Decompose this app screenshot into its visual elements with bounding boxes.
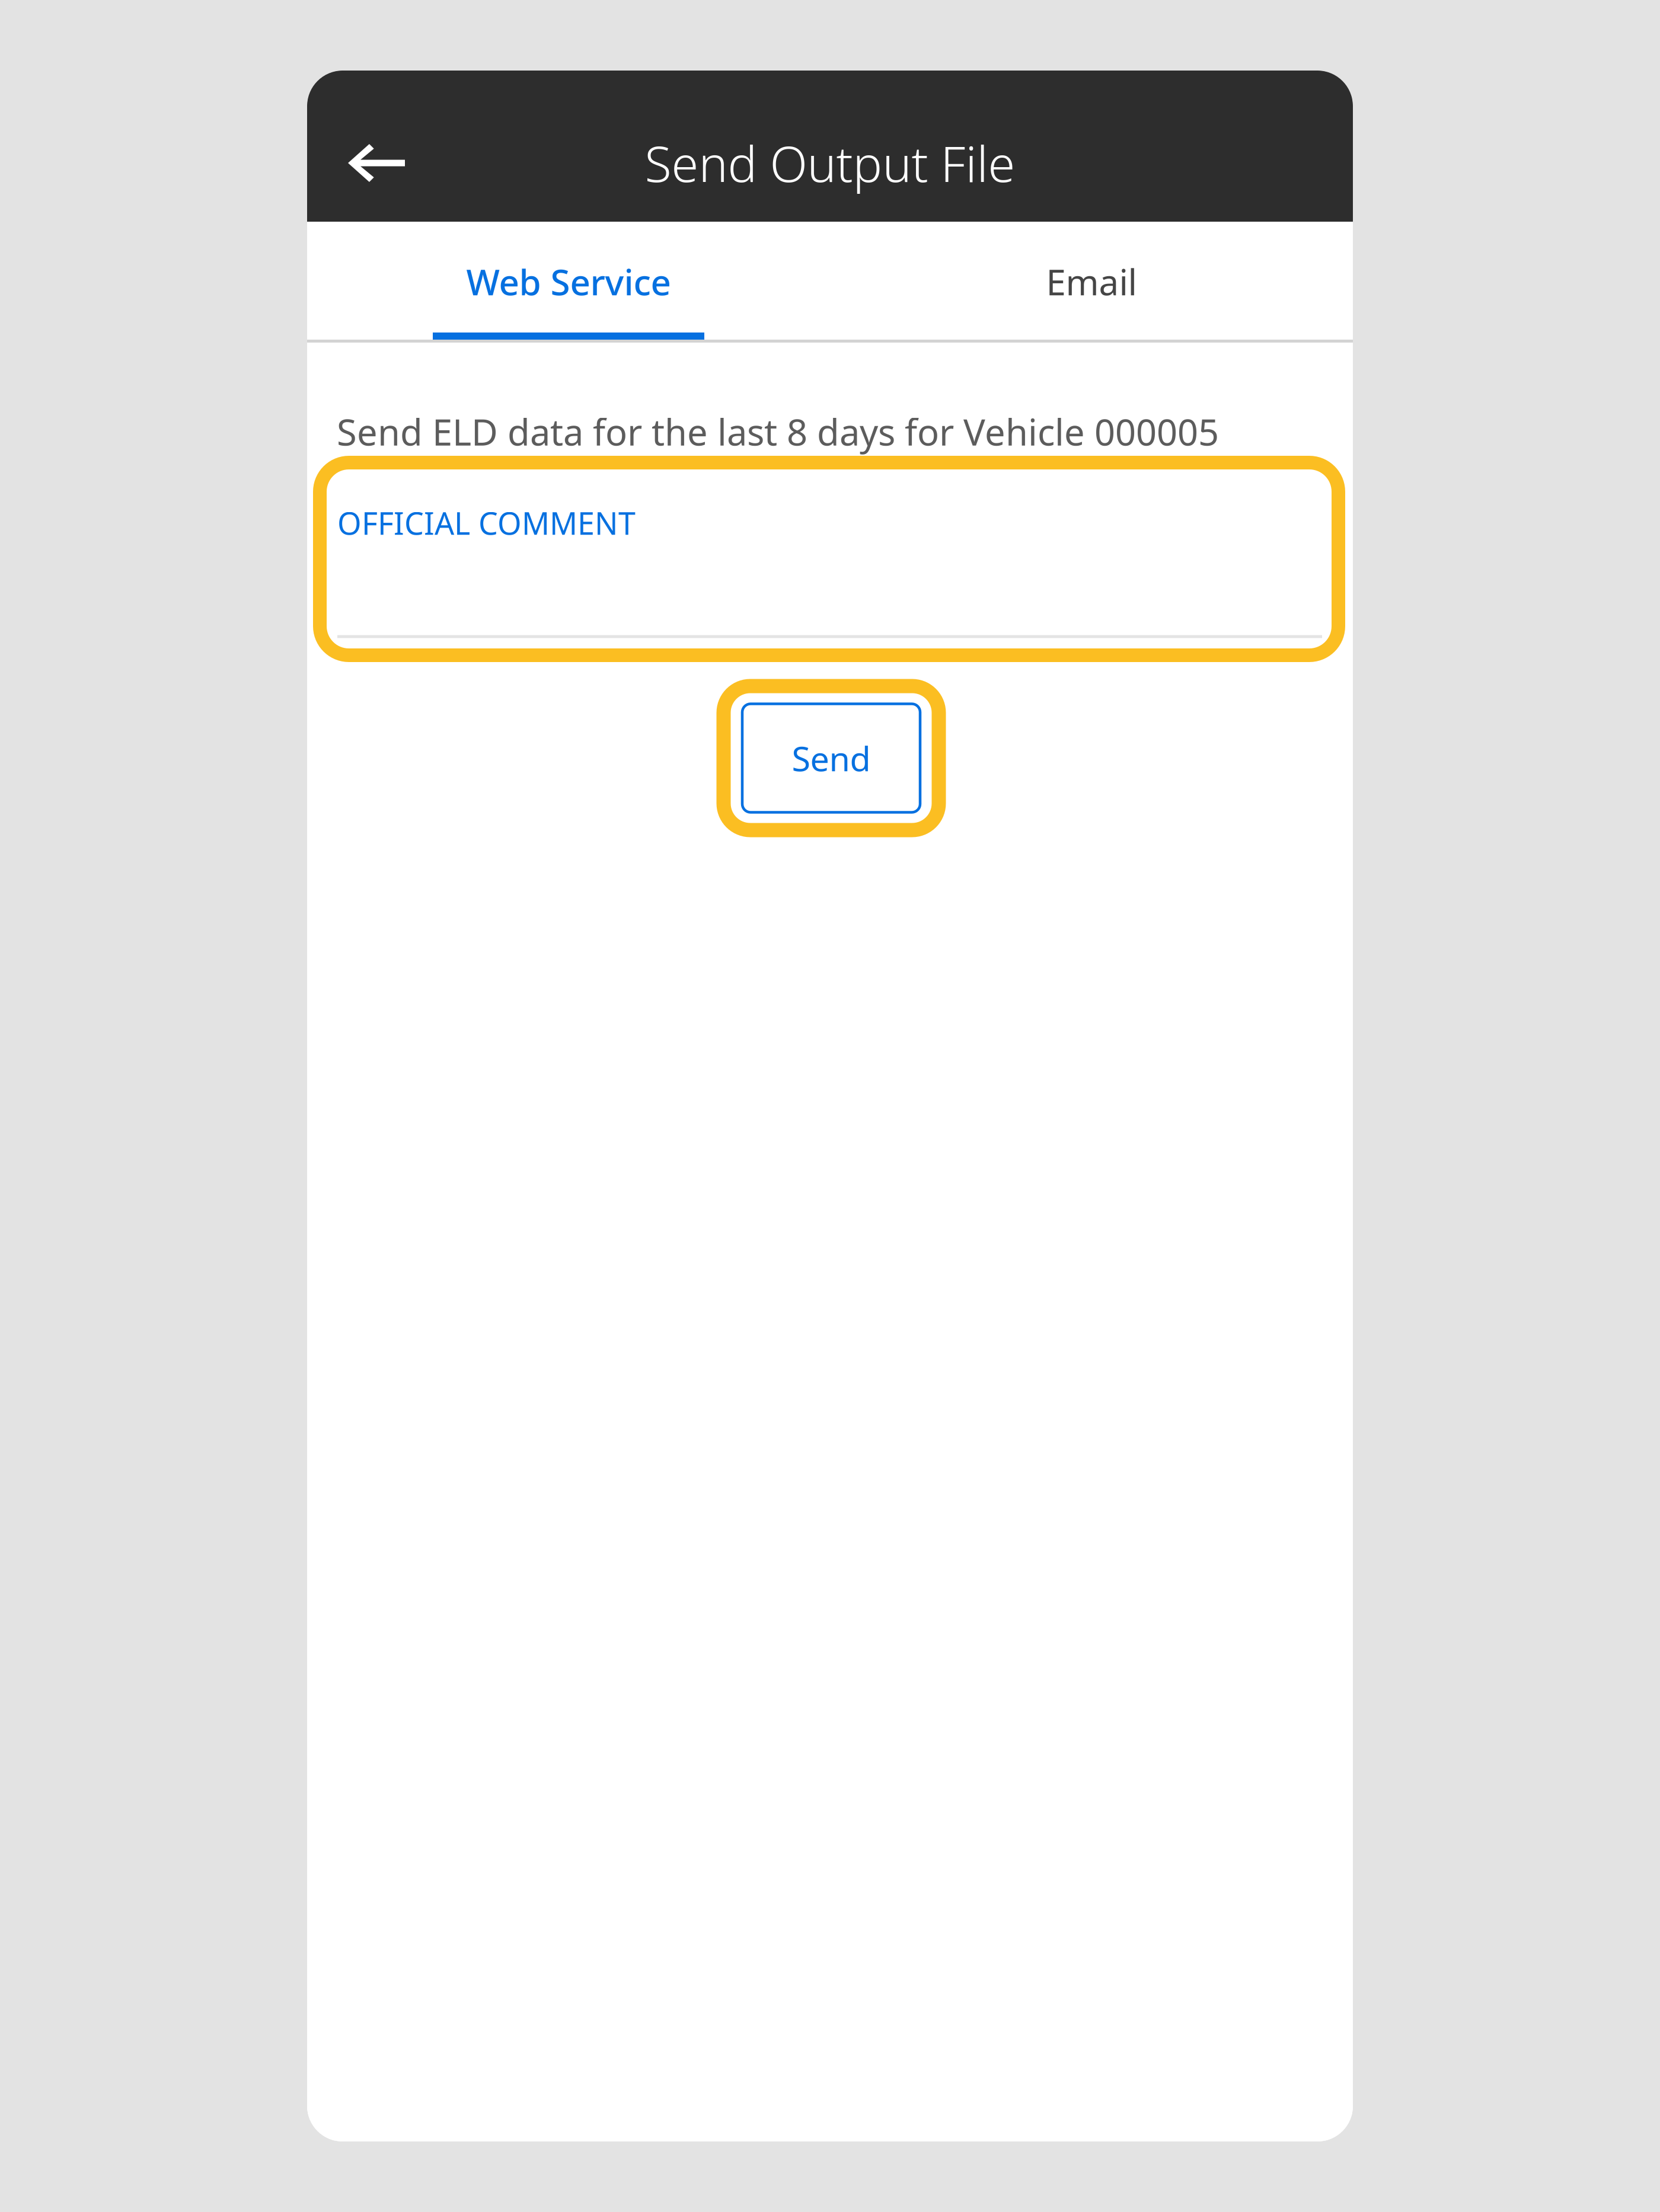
staticText: Send Output File: [645, 130, 1015, 196]
staticText: Web Service: [466, 258, 671, 305]
button[interactable]: Email: [830, 222, 1353, 333]
button[interactable]: Official comment: [337, 493, 1322, 639]
staticText: Send ELD data for the last 8 days for Ve…: [337, 407, 1219, 456]
button[interactable]: Send: [716, 679, 946, 837]
staticText: Send: [792, 735, 871, 781]
staticText: Email: [1046, 258, 1137, 305]
button[interactable]: Back: [323, 110, 430, 216]
button[interactable]: Web Service: [307, 222, 830, 340]
staticText: OFFICIAL COMMENT: [337, 502, 636, 543]
